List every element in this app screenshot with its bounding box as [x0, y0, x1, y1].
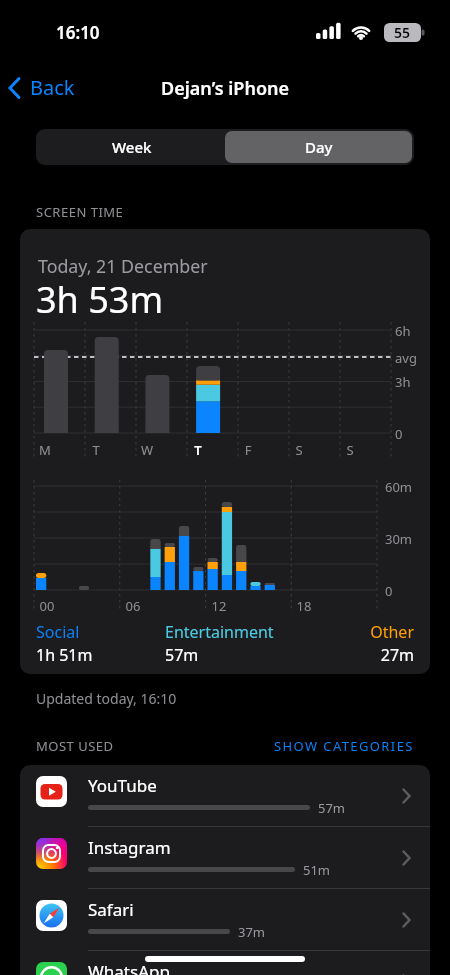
button[interactable]: YouTube — [20, 765, 430, 827]
staticText: SHOW CATEGORIES — [274, 737, 414, 755]
staticText: Updated today, 16:10 — [36, 689, 177, 708]
staticText: 30m — [385, 530, 413, 548]
staticText: S — [289, 441, 309, 459]
staticText: 60m — [385, 478, 413, 496]
button[interactable]: SHOW CATEGORIES — [258, 731, 414, 761]
staticText: Social — [36, 621, 80, 643]
staticText: 00 — [35, 597, 59, 615]
staticText: F — [238, 441, 258, 459]
staticText: 1h 51m — [36, 644, 93, 666]
staticText: 51m — [303, 861, 331, 879]
staticText: S — [340, 441, 360, 459]
staticText: T — [188, 441, 208, 459]
staticText: Today, 21 December — [38, 254, 208, 278]
staticText: 27m — [380, 644, 414, 666]
staticText: avg — [395, 349, 417, 367]
staticText: Back — [30, 74, 75, 101]
staticText: W — [137, 441, 157, 459]
staticText: 18 — [292, 597, 316, 615]
staticText: Safari — [88, 898, 134, 921]
staticText: 0 — [395, 425, 403, 443]
button[interactable]: Week — [38, 131, 225, 163]
button[interactable]: Day — [225, 131, 412, 163]
staticText: Entertainment — [165, 621, 274, 643]
staticText: T — [86, 441, 106, 459]
staticText: 12 — [207, 597, 231, 615]
staticText: 3h 53m — [36, 275, 164, 324]
staticText: Instagram — [88, 836, 171, 859]
staticText: Dejan’s iPhone — [161, 76, 290, 101]
button[interactable]: WhatsApp — [20, 951, 430, 975]
staticText: YouTube — [88, 774, 157, 797]
staticText: 57m — [318, 799, 346, 817]
button[interactable]: Safari — [20, 889, 430, 951]
staticText: M — [35, 441, 55, 459]
staticText: 57m — [165, 644, 199, 666]
staticText: WhatsApp — [88, 960, 170, 975]
staticText: 3h — [395, 373, 411, 391]
staticText: Other — [370, 621, 414, 643]
staticText: MOST USED — [36, 737, 114, 755]
staticText: 55 — [394, 23, 411, 42]
staticText: 6h — [395, 322, 411, 340]
staticText: SCREEN TIME — [36, 203, 124, 221]
button[interactable]: Back — [6, 72, 77, 103]
button[interactable]: Instagram — [20, 827, 430, 889]
staticText: 0 — [385, 582, 393, 600]
staticText: 16:10 — [56, 21, 100, 44]
staticText: 06 — [121, 597, 145, 615]
staticText: Day — [305, 137, 333, 157]
staticText: Week — [112, 137, 152, 157]
staticText: 37m — [238, 923, 266, 941]
